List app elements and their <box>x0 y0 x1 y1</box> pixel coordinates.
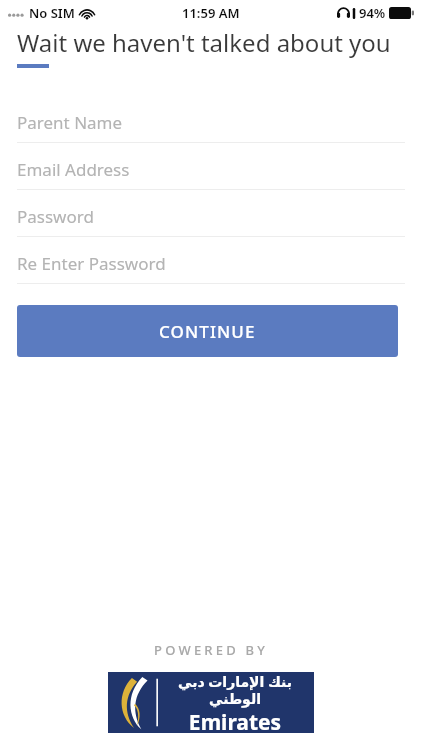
staticText: Wait we haven't talked about you <box>17 26 391 59</box>
staticText: Emirates NBD <box>164 708 306 733</box>
staticText: Parent Name <box>17 111 123 134</box>
staticText: 94% <box>359 4 386 22</box>
staticText: No SIM <box>29 4 75 22</box>
staticText: 11:59 AM <box>182 4 240 22</box>
button[interactable]: Parent Name <box>0 103 422 150</box>
staticText: Password <box>17 205 94 228</box>
button[interactable]: CONTINUE <box>17 305 398 357</box>
staticText: Re Enter Password <box>17 252 166 275</box>
button[interactable]: Password <box>0 197 422 244</box>
staticText: Email Address <box>17 158 130 181</box>
staticText: CONTINUE <box>159 320 256 343</box>
staticText: POWERED BY <box>154 641 268 659</box>
staticText: بنك الإمارات دبي الوطني <box>164 672 306 707</box>
button[interactable]: Re Enter Password <box>0 244 422 291</box>
button[interactable]: Email Address <box>0 150 422 197</box>
